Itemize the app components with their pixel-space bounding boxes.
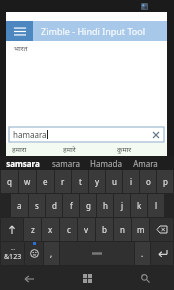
staticText: f	[70, 200, 73, 211]
button[interactable]: a	[11, 194, 28, 217]
staticText: t	[79, 176, 82, 187]
staticText: i	[130, 176, 133, 187]
staticText: c	[67, 224, 71, 235]
button[interactable]: i	[123, 170, 139, 193]
button[interactable]: c	[60, 218, 77, 241]
staticText: v	[84, 224, 89, 235]
staticText: j	[121, 200, 124, 211]
button[interactable]: Search	[116, 267, 174, 290]
button[interactable]: f	[63, 194, 79, 217]
staticText: हमारे	[63, 145, 76, 155]
button[interactable]: Emoji	[25, 242, 43, 265]
staticText: hamaara	[13, 129, 47, 140]
button[interactable]: q	[1, 170, 18, 193]
button[interactable]: u	[106, 170, 122, 193]
staticText: &123	[4, 252, 22, 262]
button[interactable]: m	[132, 218, 149, 241]
button[interactable]: x	[42, 218, 59, 241]
button[interactable]: hamaara	[9, 127, 164, 142]
staticText: e	[43, 176, 48, 187]
button[interactable]: ,	[44, 242, 59, 265]
staticText: ,	[50, 248, 53, 259]
button[interactable]: Amara	[126, 156, 164, 170]
button[interactable]: हमारा	[6, 143, 59, 156]
staticText: w	[24, 176, 31, 187]
button[interactable]: w	[19, 170, 36, 193]
button[interactable]: p	[157, 170, 173, 193]
button[interactable]: t	[72, 170, 88, 193]
button[interactable]: samsara	[0, 156, 46, 170]
button[interactable]: n	[114, 218, 131, 241]
staticText: ...	[11, 245, 16, 252]
staticText: z	[31, 224, 35, 235]
button[interactable]: .	[135, 242, 150, 265]
button[interactable]: Enter	[151, 242, 173, 265]
button[interactable]: s	[29, 194, 45, 217]
button[interactable]: Back	[0, 267, 58, 290]
staticText: r	[61, 176, 65, 187]
staticText: .	[141, 248, 144, 259]
button[interactable]: d	[46, 194, 62, 217]
button[interactable]: e	[37, 170, 54, 193]
button[interactable]: ...	[1, 242, 24, 265]
button[interactable]: g	[80, 194, 96, 217]
staticText: l	[155, 200, 158, 211]
button[interactable]: l	[148, 194, 164, 217]
staticText: d	[52, 200, 57, 211]
button[interactable]: y	[89, 170, 105, 193]
staticText: h	[103, 200, 108, 211]
button[interactable]: हमारे	[59, 143, 113, 156]
staticText: u	[112, 176, 117, 187]
staticText: x	[48, 224, 53, 235]
button[interactable]: Menu	[6, 21, 33, 41]
staticText: o	[146, 176, 151, 187]
button[interactable]: h	[97, 194, 113, 217]
button[interactable]: z	[24, 218, 41, 241]
staticText: Zimble - Hindi Input Tool	[41, 25, 146, 37]
button[interactable]: Menu	[6, 21, 167, 41]
staticText: p	[163, 176, 168, 187]
button[interactable]: v	[78, 218, 95, 241]
button[interactable]: Home	[58, 267, 116, 290]
staticText: Amara	[133, 158, 158, 169]
staticText: m	[137, 224, 145, 235]
button[interactable]: b	[96, 218, 113, 241]
staticText: y	[95, 176, 100, 187]
staticText: b	[102, 224, 107, 235]
staticText: हमारा	[12, 145, 27, 155]
button[interactable]: कुमार	[113, 143, 167, 156]
staticText: n	[120, 224, 125, 235]
button[interactable]: o	[140, 170, 156, 193]
staticText: g	[86, 200, 91, 211]
button[interactable]: samara	[46, 156, 86, 170]
button[interactable]: j	[114, 194, 130, 217]
button[interactable]: r	[55, 170, 71, 193]
button[interactable]: Backspace	[150, 218, 173, 241]
staticText: s	[35, 200, 39, 211]
button[interactable]: Space	[60, 242, 134, 265]
button[interactable]: Shift	[1, 218, 23, 241]
staticText: भारत	[14, 44, 28, 54]
staticText: Hamada	[90, 158, 122, 169]
staticText: q	[7, 176, 12, 187]
staticText: a	[17, 200, 22, 211]
button[interactable]: Hamada	[86, 156, 126, 170]
staticText: k	[137, 200, 142, 211]
staticText: samara	[52, 158, 80, 169]
button[interactable]: k	[131, 194, 147, 217]
staticText: samsara	[6, 158, 40, 169]
button[interactable]: Clear text	[149, 128, 162, 141]
staticText: कुमार	[117, 145, 132, 155]
